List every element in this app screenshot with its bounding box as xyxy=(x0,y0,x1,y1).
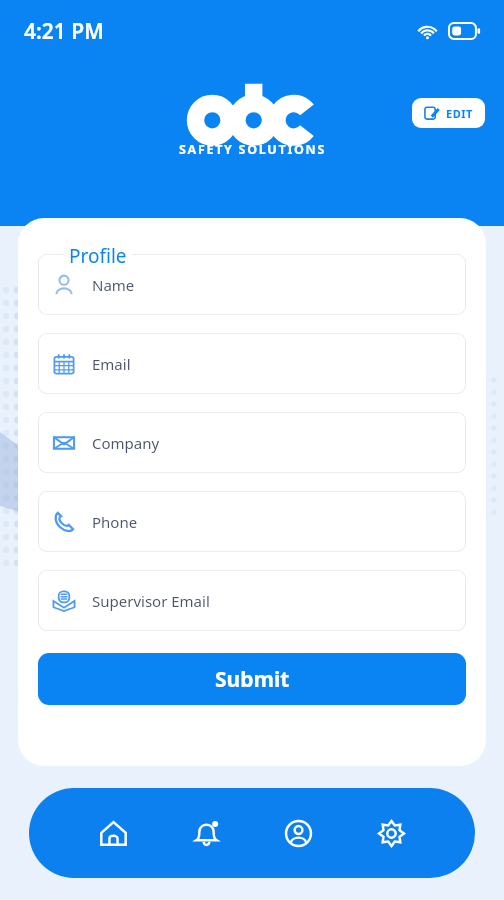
staticText: Company xyxy=(92,433,160,453)
button[interactable]: Notifications xyxy=(177,804,235,862)
button[interactable]: Phone xyxy=(38,491,466,552)
button[interactable]: Email xyxy=(38,333,466,394)
staticText: EDIT xyxy=(446,106,473,121)
staticText: Submit xyxy=(215,665,290,694)
button[interactable]: Supervisor Email xyxy=(38,570,466,631)
staticText: Name xyxy=(92,275,135,295)
staticText: Email xyxy=(92,354,131,374)
staticText: 4:21 PM xyxy=(24,17,104,46)
button[interactable]: Settings xyxy=(362,804,420,862)
button[interactable]: Profile xyxy=(269,804,327,862)
button[interactable]: Home xyxy=(84,804,142,862)
button[interactable]: Name xyxy=(38,254,466,315)
button[interactable]: Company xyxy=(38,412,466,473)
staticText: SAFETY SOLUTIONS xyxy=(179,141,326,158)
staticText: Phone xyxy=(92,512,138,532)
staticText: Profile xyxy=(69,243,127,269)
button[interactable]: EDIT xyxy=(412,98,485,128)
staticText: Supervisor Email xyxy=(92,591,210,611)
button[interactable]: Submit xyxy=(38,653,466,705)
